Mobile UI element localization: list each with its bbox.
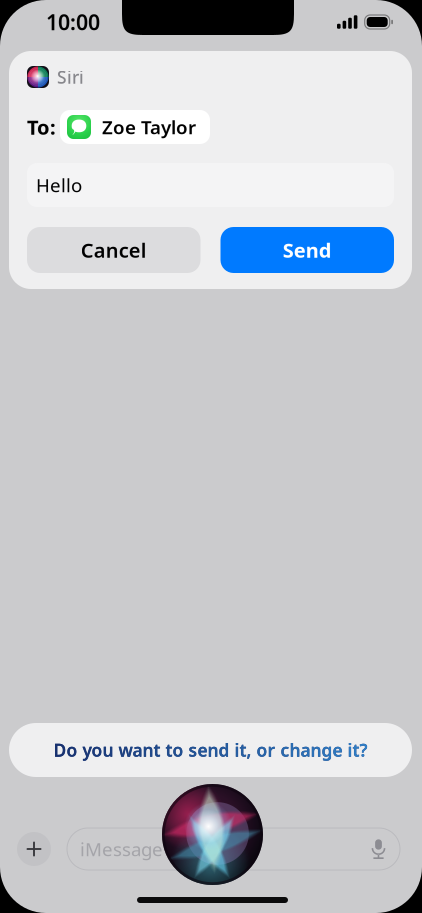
button[interactable]: Add attachment	[17, 832, 51, 866]
staticText: Zoe Taylor	[102, 115, 196, 139]
staticText: Siri	[57, 65, 84, 88]
staticText: Do you want to send it, or change it?	[53, 738, 367, 761]
staticText: Hello	[36, 173, 82, 197]
staticText: To:	[27, 114, 56, 140]
staticText: 10:00	[46, 8, 100, 36]
button[interactable]: Cancel	[27, 227, 200, 273]
button[interactable]: Send	[220, 227, 394, 273]
staticText: iMessage	[80, 837, 163, 861]
staticText: Send	[283, 237, 332, 263]
staticText: Cancel	[81, 237, 147, 263]
button[interactable]: Do you want to send it, or change it?	[9, 723, 412, 777]
